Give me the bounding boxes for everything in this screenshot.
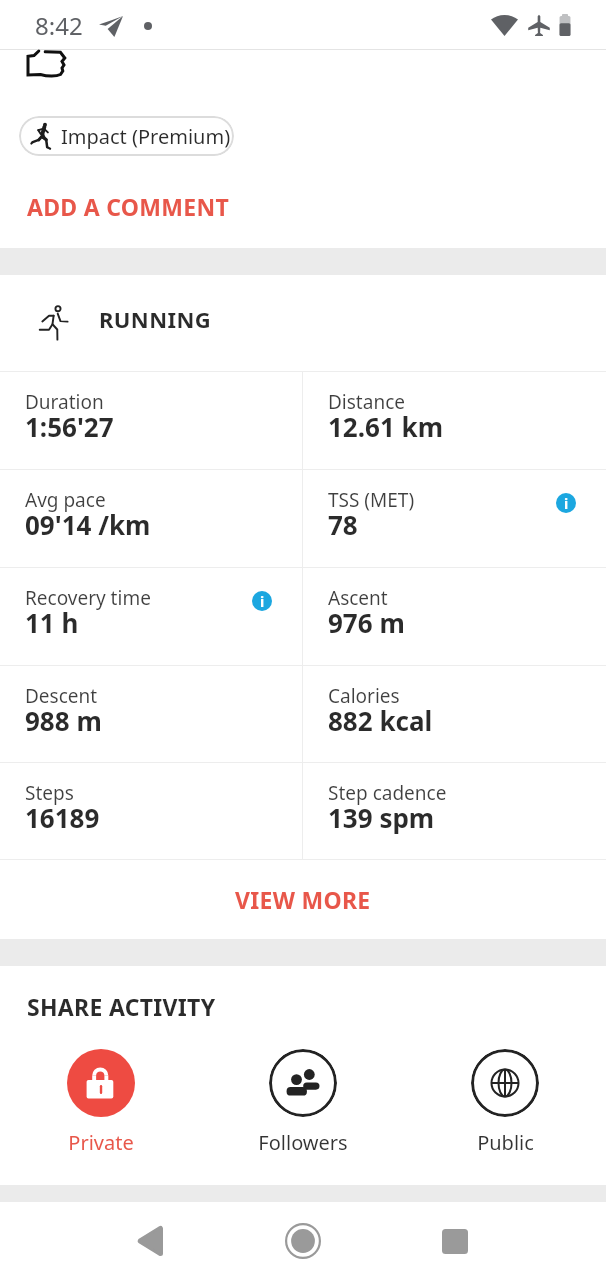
staticText: 09'14 /km (25, 507, 151, 542)
staticText: Impact (Premium) (61, 123, 231, 150)
staticText: Step cadence (328, 780, 447, 806)
staticText: Distance (328, 389, 405, 415)
button[interactable]: Followers (202, 1049, 404, 1156)
staticText: RUNNING (99, 304, 212, 334)
button[interactable]: Distance (303, 372, 606, 469)
button[interactable]: Public (404, 1049, 606, 1156)
staticText: Steps (25, 780, 74, 806)
button[interactable]: TSS (MET) (303, 470, 606, 567)
staticText: 11 h (25, 605, 79, 640)
button[interactable]: Info about Recovery time (252, 591, 272, 611)
button[interactable]: Calories (303, 666, 606, 762)
staticText: 12.61 km (328, 409, 444, 444)
staticText: Calories (328, 683, 400, 709)
staticText: 8:42 (35, 9, 83, 42)
button[interactable]: Info about TSS (MET) (556, 493, 576, 513)
staticText: 882 kcal (328, 703, 433, 738)
staticText: 1:56'27 (25, 409, 114, 444)
button[interactable]: Steps (0, 763, 302, 859)
button[interactable]: Duration (0, 372, 302, 469)
staticText: Public (477, 1129, 534, 1156)
staticText: ADD A COMMENT (27, 191, 230, 222)
staticText: i (564, 494, 569, 513)
staticText: Ascent (328, 585, 388, 611)
staticText: Descent (25, 683, 98, 709)
staticText: 976 m (328, 605, 405, 640)
staticText: Avg pace (25, 487, 106, 513)
staticText: VIEW MORE (235, 884, 371, 915)
staticText: i (260, 592, 265, 611)
button[interactable]: Private (0, 1049, 202, 1156)
button[interactable]: VIEW MORE (0, 860, 606, 939)
button[interactable]: Descent (0, 666, 302, 762)
staticText: 988 m (25, 703, 102, 738)
staticText: 139 spm (328, 800, 435, 835)
button[interactable]: Recent apps (427, 1213, 483, 1269)
button[interactable]: Impact (Premium) (19, 116, 234, 156)
staticText: SHARE ACTIVITY (27, 991, 216, 1022)
button[interactable]: Step cadence (303, 763, 606, 859)
staticText: Duration (25, 389, 104, 415)
staticText: Private (68, 1129, 134, 1156)
staticText: Recovery time (25, 585, 151, 611)
button[interactable]: Home (275, 1213, 331, 1269)
button[interactable]: Recovery time (0, 568, 302, 665)
staticText: Followers (258, 1129, 348, 1156)
staticText: 16189 (25, 800, 100, 835)
button[interactable]: Avg pace (0, 470, 302, 567)
button[interactable]: ADD A COMMENT (0, 180, 250, 233)
button[interactable]: Back (122, 1213, 178, 1269)
button[interactable]: Ascent (303, 568, 606, 665)
staticText: 78 (328, 507, 358, 542)
staticText: TSS (MET) (328, 487, 415, 513)
